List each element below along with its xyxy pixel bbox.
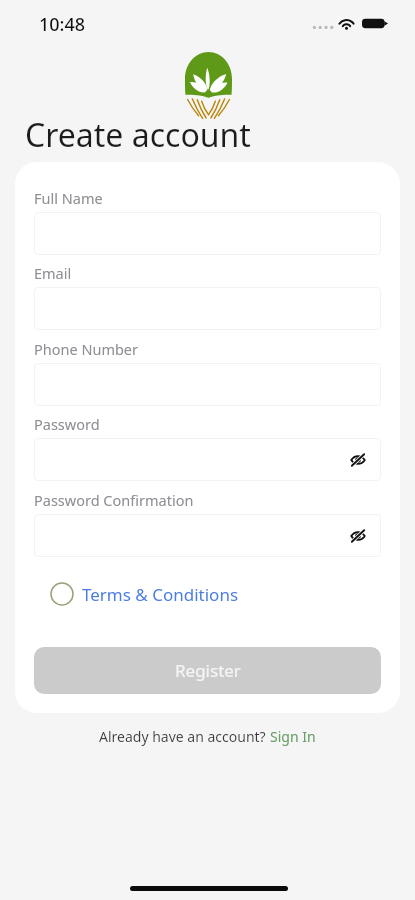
- button[interactable]: Toggle password visibility: [347, 449, 369, 471]
- staticText: Full Name: [34, 188, 103, 208]
- button[interactable]: Register: [34, 647, 381, 694]
- staticText: Terms & Conditions: [82, 583, 239, 606]
- staticText: Sign In: [270, 727, 316, 746]
- staticText: Create account: [25, 113, 251, 157]
- staticText: Password Confirmation: [34, 490, 194, 510]
- staticText: Email: [34, 263, 72, 283]
- button[interactable]: Sign In: [270, 727, 316, 746]
- button[interactable]: Toggle password visibility: [34, 514, 381, 557]
- staticText: Register: [175, 659, 241, 682]
- staticText: Already have an account?: [99, 727, 270, 746]
- button[interactable]: Terms & Conditions: [46, 578, 243, 610]
- button[interactable]: Toggle password visibility: [347, 525, 369, 547]
- staticText: Password: [34, 414, 100, 434]
- staticText: Phone Number: [34, 339, 139, 359]
- button[interactable]: Toggle password visibility: [34, 438, 381, 481]
- staticText: 10:48: [39, 12, 86, 37]
